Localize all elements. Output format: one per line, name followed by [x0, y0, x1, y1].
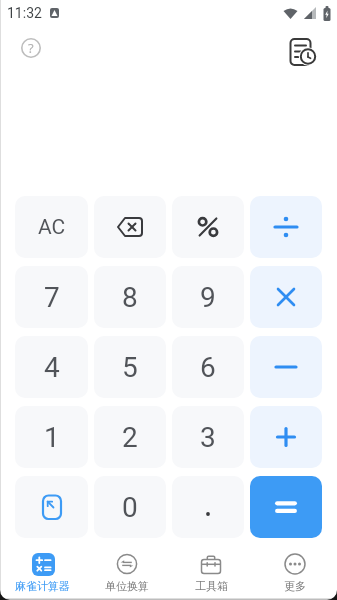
- button[interactable]: 3: [172, 406, 244, 468]
- button[interactable]: 0: [94, 476, 166, 538]
- button[interactable]: 工具箱: [169, 548, 253, 600]
- button[interactable]: 2: [94, 406, 166, 468]
- button[interactable]: 8: [94, 266, 166, 328]
- staticText: 6: [200, 351, 216, 384]
- button[interactable]: [250, 406, 322, 468]
- button[interactable]: 6: [172, 336, 244, 398]
- staticText: 3: [200, 421, 216, 454]
- staticText: 2: [122, 421, 138, 454]
- button[interactable]: [172, 476, 244, 538]
- button[interactable]: 更多: [253, 548, 337, 600]
- button[interactable]: ?: [13, 30, 49, 66]
- staticText: 11:32: [7, 5, 42, 21]
- button[interactable]: [94, 196, 166, 258]
- button[interactable]: 4: [15, 336, 88, 398]
- button[interactable]: 7: [15, 266, 88, 328]
- button[interactable]: 1: [15, 406, 88, 468]
- button[interactable]: 麻雀计算器: [0, 548, 85, 600]
- button[interactable]: [250, 196, 322, 258]
- button[interactable]: [250, 476, 322, 538]
- button[interactable]: 单位换算: [85, 548, 169, 600]
- button[interactable]: AC: [15, 196, 88, 258]
- staticText: ?: [28, 39, 34, 57]
- staticText: 9: [200, 281, 216, 314]
- staticText: 7: [44, 281, 60, 314]
- staticText: 5: [122, 351, 138, 384]
- button[interactable]: [15, 476, 88, 538]
- staticText: 4: [44, 351, 60, 384]
- staticText: 单位换算: [105, 579, 149, 593]
- staticText: 1: [44, 421, 60, 454]
- staticText: 8: [122, 281, 138, 314]
- button[interactable]: [284, 34, 320, 70]
- staticText: 工具箱: [195, 579, 228, 593]
- button[interactable]: [172, 196, 244, 258]
- staticText: AC: [38, 215, 66, 240]
- button[interactable]: 9: [172, 266, 244, 328]
- button[interactable]: [250, 336, 322, 398]
- button[interactable]: [250, 266, 322, 328]
- staticText: 更多: [284, 579, 306, 593]
- staticText: 麻雀计算器: [15, 579, 70, 593]
- button[interactable]: 5: [94, 336, 166, 398]
- staticText: 0: [122, 491, 138, 524]
